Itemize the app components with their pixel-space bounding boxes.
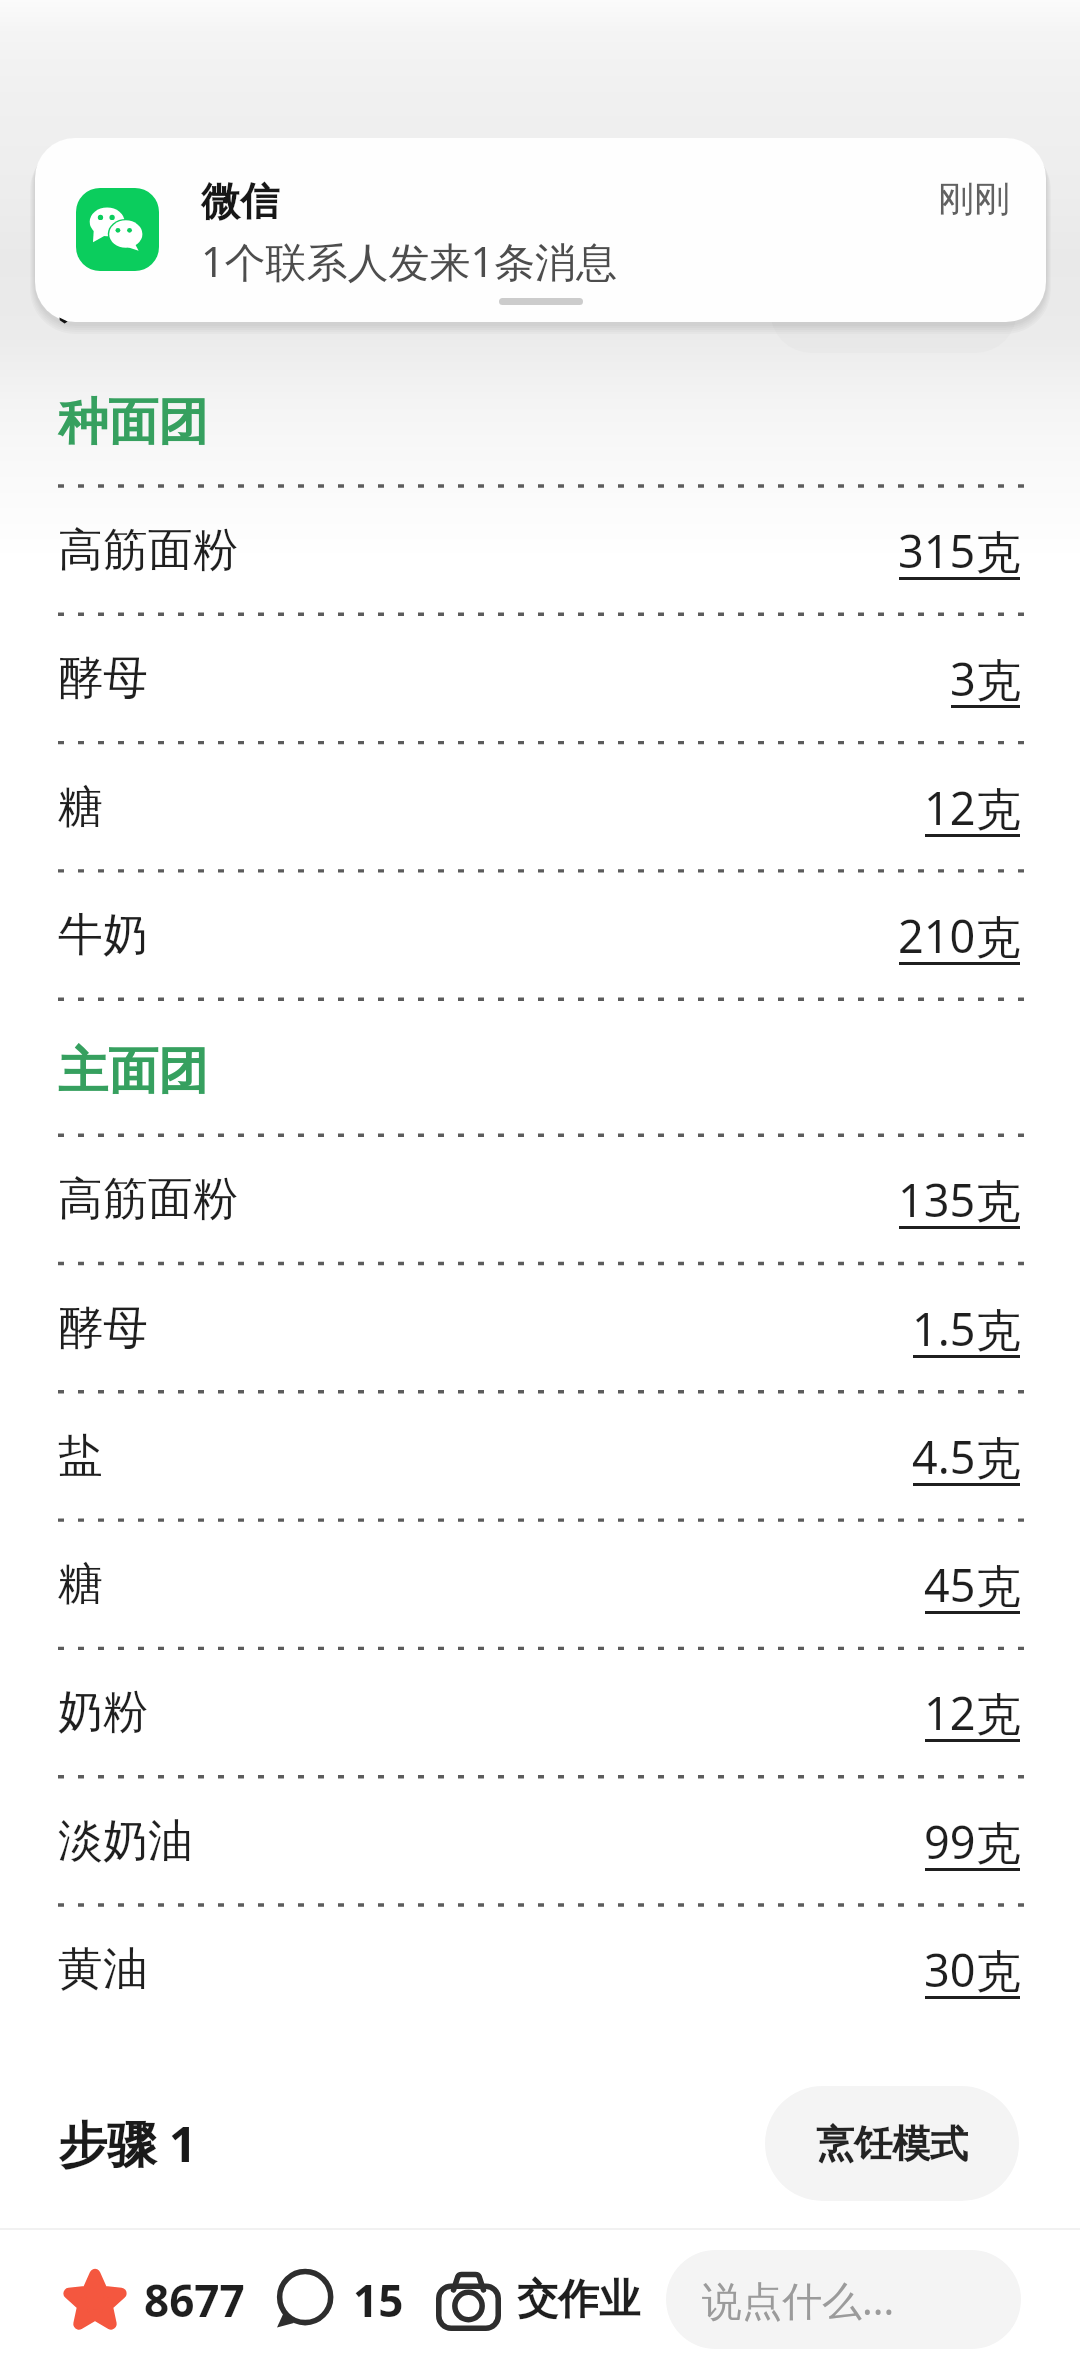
button[interactable]: Upload photo <box>426 2249 650 2351</box>
staticText: 主面团 <box>58 1040 208 1103</box>
staticText: 刚刚 <box>938 176 1010 221</box>
staticText: 30克 <box>924 1939 1021 2000</box>
staticText: 糖 <box>58 1556 103 1613</box>
button[interactable]: 说点什么... <box>666 2250 1021 2349</box>
staticText: 牛奶 <box>58 907 148 964</box>
staticText: 4.5克 <box>912 1426 1021 1487</box>
staticText: 45克 <box>924 1554 1021 1615</box>
staticText: 微信 <box>201 177 279 226</box>
staticText: 说点什么... <box>702 2272 895 2327</box>
button[interactable]: 酵母 <box>0 1264 1080 1392</box>
button[interactable]: Comments <box>265 2249 414 2351</box>
staticText: 糖 <box>58 779 103 836</box>
staticText: 交作业 <box>517 2274 640 2326</box>
button[interactable]: 烹饪模式 <box>765 2086 1019 2201</box>
staticText: 1.5克 <box>912 1298 1021 1359</box>
staticText: 12克 <box>924 1682 1021 1743</box>
button[interactable]: 糖 <box>0 1520 1080 1648</box>
staticText: 高筋面粉 <box>58 522 238 579</box>
button[interactable]: 黄油 <box>0 1905 1080 2033</box>
button[interactable]: 糖 <box>0 743 1080 871</box>
button[interactable]: 微信 <box>35 138 1046 322</box>
button[interactable]: 酵母 <box>0 614 1080 742</box>
button[interactable]: 牛奶 <box>0 871 1080 999</box>
staticText: 烹饪模式 <box>816 2120 968 2168</box>
other: Upload photo <box>436 2270 501 2330</box>
staticText: 315克 <box>898 520 1021 581</box>
button[interactable]: 盐 <box>0 1392 1080 1520</box>
staticText: 8677 <box>144 2270 245 2330</box>
staticText: 种面团 <box>58 391 208 454</box>
staticText: 黄油 <box>58 1941 148 1998</box>
staticText: 酵母 <box>58 650 148 707</box>
staticText: 99克 <box>924 1811 1021 1872</box>
button[interactable]: Favourite <box>52 2249 255 2351</box>
staticText: 奶粉 <box>58 1684 148 1741</box>
button[interactable]: 高筋面粉 <box>0 1135 1080 1263</box>
staticText: 淡奶油 <box>58 1813 193 1870</box>
button[interactable]: 高筋面粉 <box>0 486 1080 614</box>
staticText: 步骤 1 <box>58 2110 197 2177</box>
button[interactable]: 步骤 1 <box>58 2086 197 2201</box>
staticText: 高筋面粉 <box>58 1171 238 1228</box>
staticText: 3克 <box>950 648 1021 709</box>
button[interactable]: 奶粉 <box>0 1648 1080 1776</box>
staticText: 135克 <box>898 1169 1021 1230</box>
staticText: 210克 <box>898 905 1021 966</box>
staticText: 盐 <box>58 1428 103 1485</box>
staticText: 15 <box>353 2270 404 2330</box>
button[interactable]: 淡奶油 <box>0 1777 1080 1905</box>
other: Comments <box>275 2271 333 2329</box>
staticText: 12克 <box>924 777 1021 838</box>
staticText: 酵母 <box>58 1300 148 1357</box>
other: Favourite <box>62 2269 128 2331</box>
staticText: 1个联系人发来1条消息 <box>201 233 617 289</box>
